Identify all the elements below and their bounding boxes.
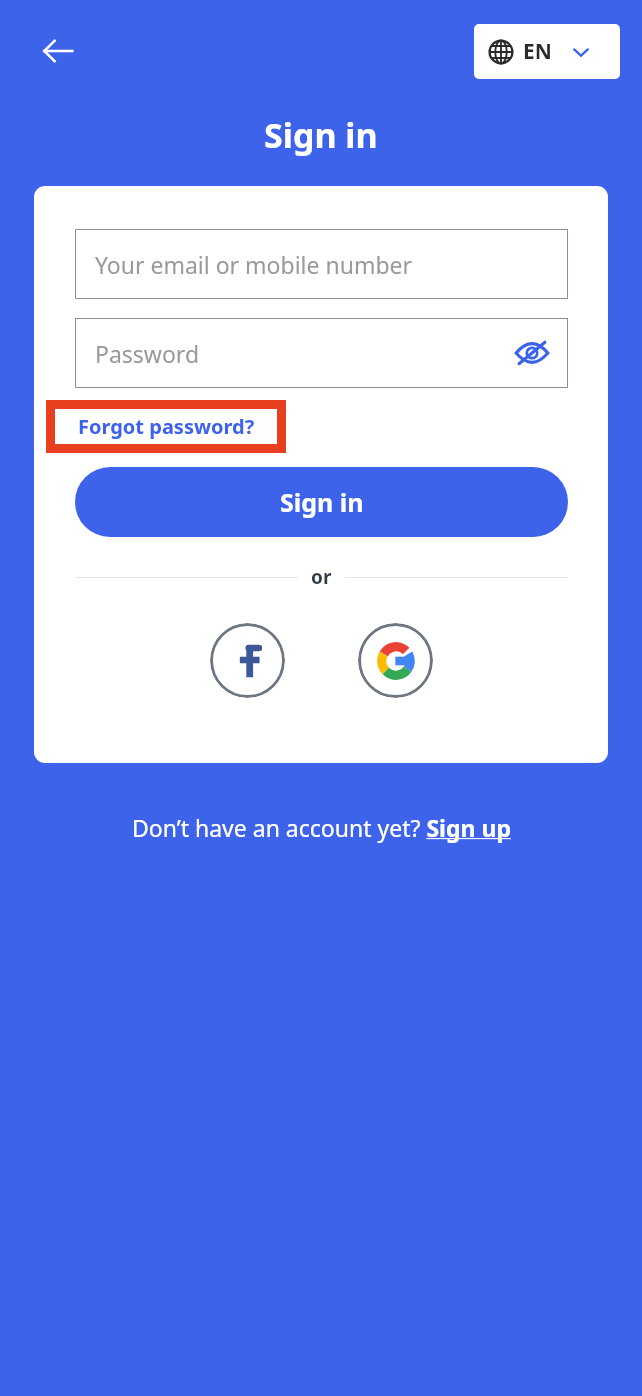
button[interactable]: Don’t have an account yet? Sign up [132, 812, 511, 843]
staticText: Password [95, 338, 200, 369]
staticText: Your email or mobile number [95, 249, 413, 280]
staticText: or [311, 564, 332, 590]
staticText: Sign in [264, 112, 378, 158]
button[interactable]: Back [30, 23, 86, 79]
button[interactable]: Forgot password? [55, 409, 277, 444]
button[interactable]: Show password [510, 331, 554, 375]
button[interactable]: EN [474, 24, 620, 79]
staticText: EN [523, 37, 552, 66]
button[interactable]: Your email or mobile number [75, 229, 568, 299]
staticText: Sign in [280, 485, 364, 519]
button[interactable]: Password [75, 318, 568, 388]
button[interactable]: Sign in [75, 467, 568, 537]
button[interactable]: Sign in with Google [358, 623, 433, 698]
staticText: Forgot password? [78, 413, 255, 440]
staticText: Don’t have an account yet? Sign up [132, 812, 511, 843]
button[interactable]: Sign in with Facebook [210, 623, 285, 698]
